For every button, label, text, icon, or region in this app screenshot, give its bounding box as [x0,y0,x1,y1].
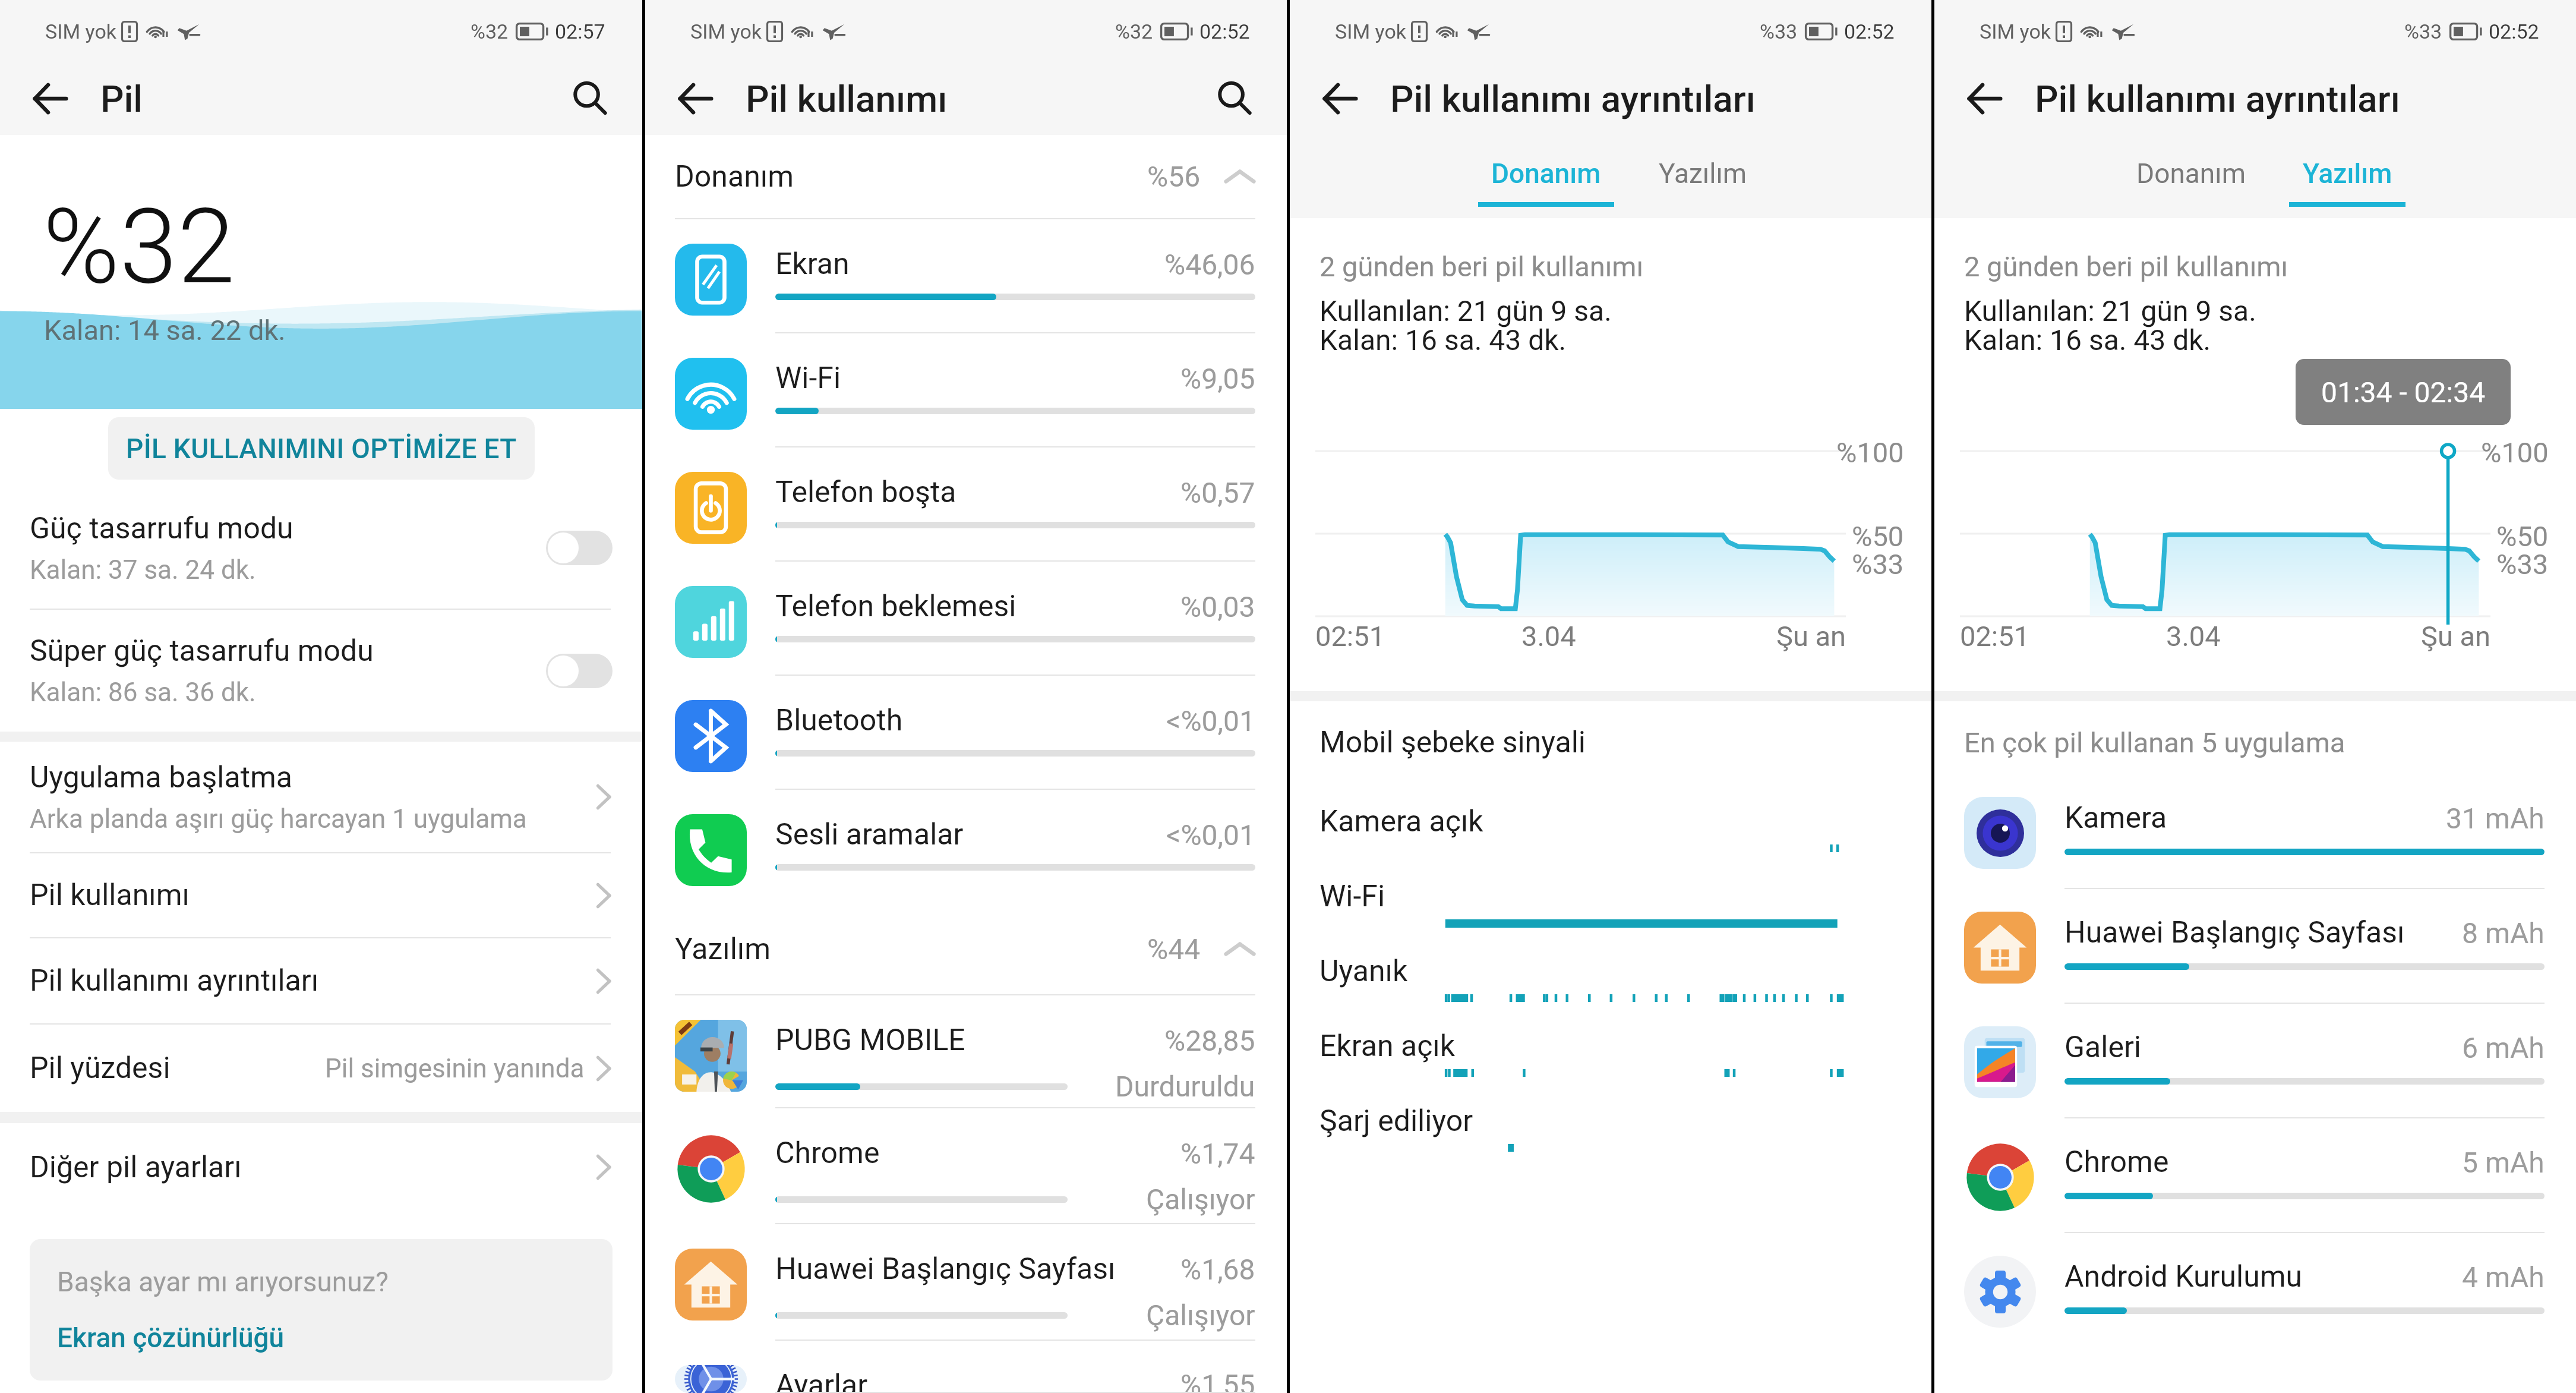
button[interactable]: Süper güç tasarrufu modu [0,610,642,732]
staticText: Android Kurulumu [2064,1259,2462,1294]
staticText: Durduruldu [1115,1070,1255,1103]
staticText: Telefon beklemesi [775,589,1180,624]
button[interactable]: Back [1952,62,2018,135]
button[interactable]: Chrome [1934,1118,2576,1233]
staticText: 2 günden beri pil kullanımı [1964,250,2288,283]
staticText: 02:52 [1199,20,1250,43]
button[interactable]: Telefon beklemesi [645,562,1287,676]
staticText: Kalan: 16 sa. 43 dk. [1964,323,2211,357]
staticText: 2 günden beri pil kullanımı [1319,250,1644,283]
staticText: Bluetooth [775,703,1166,738]
staticText: %33 [1760,20,1798,43]
button[interactable]: Donanım [2123,135,2259,218]
staticText: Pil kullanımı ayrıntıları [2035,77,2400,121]
staticText: 01:34 - 02:34 [2321,376,2486,409]
staticText: <%0,01 [1166,704,1255,738]
button[interactable]: Telefon boşta [645,447,1287,562]
staticText: Şu an [2421,620,2490,653]
button[interactable]: Sesli aramalar [645,790,1287,904]
staticText: Mobil şebeke sinyali [1319,725,1586,760]
staticText: Yazılım [2303,157,2392,190]
staticText: 3.04 [1521,620,1576,653]
staticText: SIM yok [45,20,117,43]
button[interactable]: Android Kurulumu [1934,1233,2576,1348]
staticText: <%0,01 [1166,818,1255,852]
staticText: %44 [1147,932,1201,966]
button[interactable]: Huawei Başlangıç Sayfası [1934,889,2576,1004]
button[interactable]: Galeri [1934,1004,2576,1118]
button[interactable]: PİL KULLANIMINI OPTİMİZE ET [108,417,535,480]
staticText: Telefon boşta [775,475,1180,510]
staticText: 31 mAh [2446,802,2545,835]
staticText: Pil [100,77,143,121]
staticText: Pil kullanımı [746,77,948,121]
staticText: SIM yok [1335,20,1407,43]
staticText: %32 [1115,20,1153,43]
staticText: Ayarlar [775,1368,1180,1393]
staticText: Sesli aramalar [775,817,1166,852]
button[interactable]: Yazılım [2289,135,2405,218]
staticText: Kalan: 86 sa. 36 dk. [30,677,256,708]
staticText: Kalan: 16 sa. 43 dk. [1319,323,1567,357]
button[interactable]: Uygulama başlatma [0,742,642,852]
button[interactable]: Yazılım [645,904,1287,994]
staticText: 8 mAh [2462,916,2545,950]
staticText: Çalışıyor [1146,1183,1255,1216]
staticText: %100 [1836,436,1904,469]
button[interactable]: Pil kullanımı [0,853,642,937]
staticText: Pil yüzdesi [30,1051,171,1086]
staticText: %100 [2481,436,2549,469]
staticText: Galeri [2064,1030,2462,1065]
button[interactable]: Chrome [645,1108,1287,1224]
button[interactable]: Search [1202,62,1268,135]
button[interactable]: Yazılım [1644,135,1761,218]
button[interactable]: Diğer pil ayarları [0,1123,642,1211]
staticText: Kullanılan: 21 gün 9 sa. [1319,294,1612,327]
button[interactable]: Back [17,62,83,135]
staticText: %50 [2496,520,2549,553]
button[interactable]: Başka ayar mı arıyorsunuz? [30,1239,613,1381]
button[interactable]: Huawei Başlangıç Sayfası [645,1224,1287,1341]
staticText: Ekran açık [1319,1029,1456,1064]
staticText: %1,68 [1180,1253,1255,1286]
button[interactable]: Donanım [1478,135,1614,218]
staticText: %56 [1147,160,1201,193]
staticText: Yazılım [675,932,1147,967]
button[interactable]: Wi-Fi [645,333,1287,447]
staticText: Uyanık [1319,954,1408,989]
button[interactable]: Ayarlar [645,1341,1287,1393]
staticText: Huawei Başlangıç Sayfası [2064,915,2462,950]
staticText: Yazılım [1659,157,1747,190]
staticText: Güç tasarrufu modu [30,511,293,546]
button[interactable]: Kamera [1934,774,2576,889]
staticText: Diğer pil ayarları [30,1150,242,1185]
staticText: %28,85 [1164,1024,1255,1057]
staticText: Huawei Başlangıç Sayfası [775,1252,1180,1287]
button[interactable]: Ekran [645,219,1287,333]
staticText: Çalışıyor [1146,1299,1255,1332]
button[interactable]: Back [1307,62,1373,135]
staticText: Kamera [2064,800,2446,836]
button[interactable]: Pil kullanımı ayrıntıları [0,938,642,1023]
button[interactable]: Güç tasarrufu modu [0,487,642,609]
staticText: Kalan: 14 sa. 22 dk. [44,314,286,346]
button[interactable]: Search [557,62,624,135]
button[interactable]: Back [662,62,728,135]
staticText: Süper güç tasarrufu modu [30,634,374,669]
staticText: 5 mAh [2462,1146,2545,1179]
button[interactable]: Donanım [645,135,1287,218]
button[interactable]: Pil yüzdesi [0,1025,642,1112]
staticText: %1,55 [1180,1368,1255,1393]
staticText: Donanım [675,159,1147,194]
staticText: Donanım [1491,157,1601,190]
staticText: %32 [43,186,235,308]
staticText: Pil simgesinin yanında [325,1053,585,1084]
button[interactable]: PUBG MOBILE [645,995,1287,1108]
staticText: Şu an [1776,620,1846,653]
staticText: Kamera açık [1319,804,1483,839]
button[interactable]: Bluetooth [645,676,1287,790]
staticText: Kullanılan: 21 gün 9 sa. [1964,294,2256,327]
staticText: Arka planda aşırı güç harcayan 1 uygulam… [30,803,527,834]
staticText: %33 [2496,548,2549,581]
staticText: 02:57 [555,20,605,43]
